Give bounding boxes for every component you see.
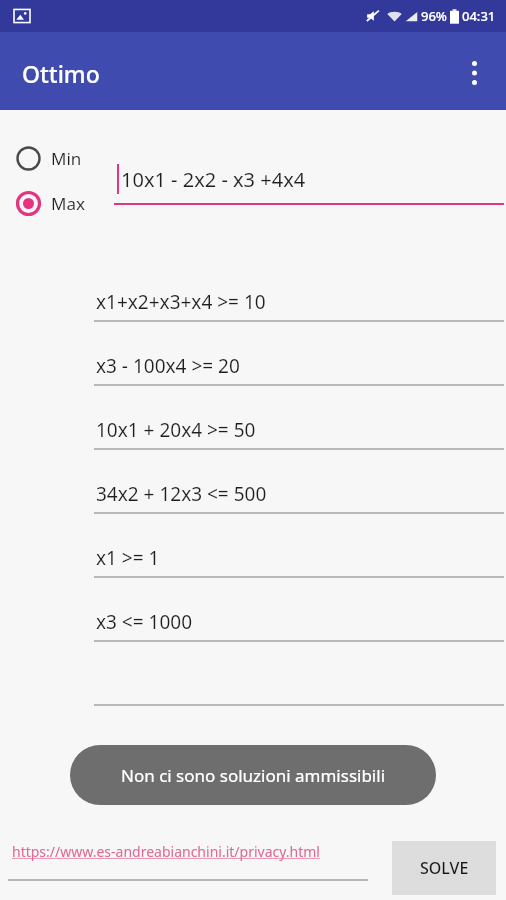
button[interactable]: x1+x2+x3+x4 >= 10 (94, 286, 504, 342)
staticText: Max (51, 192, 85, 215)
button[interactable]: More options (450, 49, 498, 97)
staticText: https://www.es-andreabianchini.it/privac… (12, 842, 320, 861)
button[interactable]: 10x1 + 20x4 >= 50 (94, 414, 504, 470)
staticText: 96% (421, 7, 447, 25)
staticText: 34x2 + 12x3 <= 500 (96, 481, 267, 507)
button[interactable] (94, 670, 504, 726)
button[interactable]: Min (12, 142, 86, 175)
staticText: Ottimo (22, 58, 100, 89)
button[interactable]: Max (12, 187, 89, 220)
staticText: x1+x2+x3+x4 >= 10 (96, 289, 266, 315)
button[interactable]: SOLVE (392, 841, 496, 895)
staticText: x3 - 100x4 >= 20 (96, 353, 240, 379)
staticText: 04:31 (462, 7, 496, 25)
staticText: Non ci sono soluzioni ammissibili (121, 764, 386, 787)
button[interactable]: x3 - 100x4 >= 20 (94, 350, 504, 406)
staticText: Min (51, 147, 82, 170)
staticText: x1 >= 1 (96, 545, 160, 571)
button[interactable]: 34x2 + 12x3 <= 500 (94, 478, 504, 534)
button[interactable]: 10x1 - 2x2 - x3 +4x4 (114, 160, 504, 212)
staticText: SOLVE (420, 857, 469, 879)
button[interactable]: https://www.es-andreabianchini.it/privac… (8, 838, 368, 884)
staticText: 10x1 - 2x2 - x3 +4x4 (121, 166, 306, 193)
staticText: 10x1 + 20x4 >= 50 (96, 417, 256, 443)
button[interactable]: x1 >= 1 (94, 542, 504, 598)
button[interactable]: x3 <= 1000 (94, 606, 504, 662)
staticText: x3 <= 1000 (96, 609, 193, 635)
